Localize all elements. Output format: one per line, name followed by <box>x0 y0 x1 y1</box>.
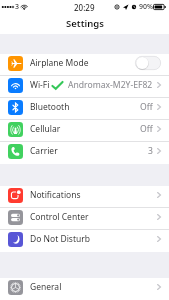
button[interactable]: Do Not Disturb <box>0 230 169 252</box>
staticText: Airplane Mode <box>30 57 89 69</box>
button[interactable]: Wi-Fi <box>0 76 169 98</box>
staticText: 3 <box>148 145 153 157</box>
staticText: Do Not Disturb <box>30 233 90 245</box>
staticText: Wi-Fi <box>30 79 50 91</box>
button[interactable]: Notifications <box>0 186 169 208</box>
staticText: 90% <box>139 2 153 12</box>
staticText: Bluetooth <box>30 101 70 113</box>
staticText: General <box>30 281 62 293</box>
staticText: Off <box>140 123 153 135</box>
staticText: Settings <box>66 17 104 30</box>
button[interactable]: General <box>0 278 169 300</box>
staticText: Off <box>140 101 153 113</box>
staticText: 3 <box>15 2 20 12</box>
button[interactable]: Airplane Mode <box>0 54 169 76</box>
button[interactable]: Control Center <box>0 208 169 230</box>
staticText: Cellular <box>30 123 61 135</box>
staticText: Notifications <box>30 189 81 201</box>
button[interactable]: Cellular <box>0 120 169 142</box>
staticText: Andromax-M2Y-EF82 <box>68 79 153 91</box>
button[interactable]: Carrier <box>0 142 169 164</box>
staticText: Carrier <box>30 145 58 157</box>
staticText: 20:29 <box>74 2 95 13</box>
button[interactable]: Bluetooth <box>0 98 169 120</box>
staticText: Control Center <box>30 211 89 223</box>
